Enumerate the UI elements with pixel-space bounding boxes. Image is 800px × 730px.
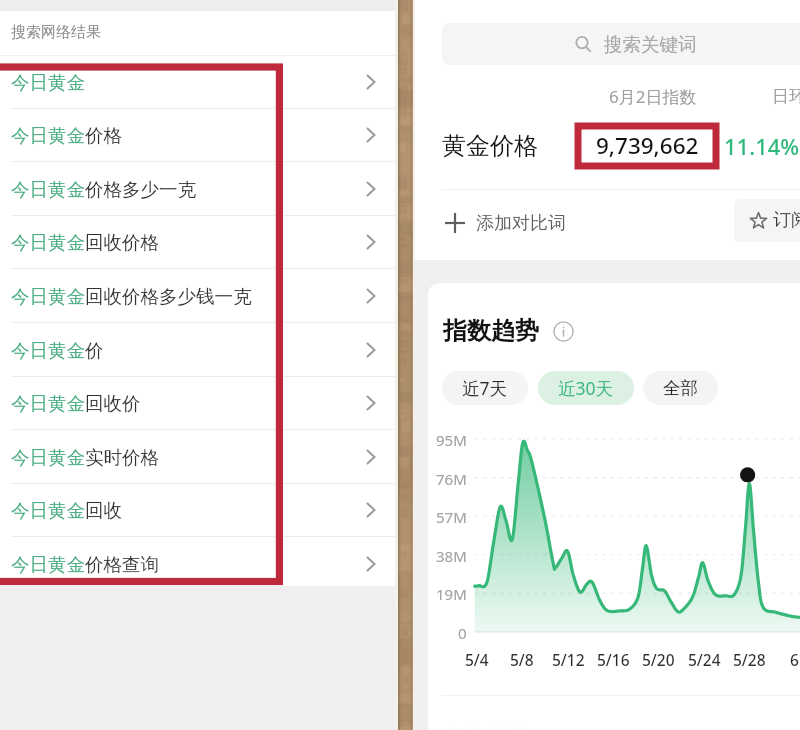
- button[interactable]: 近7天: [442, 371, 528, 405]
- other: Open suggestion: [361, 393, 381, 413]
- staticText: 今日黄金: [11, 499, 85, 522]
- staticText: 价: [85, 339, 104, 362]
- staticText: 今日黄金: [11, 178, 85, 201]
- staticText: 6月2日指数: [609, 85, 697, 108]
- button[interactable]: 订阅: [734, 199, 800, 242]
- staticText: 回收: [85, 499, 122, 522]
- button[interactable]: 近30天: [538, 371, 634, 405]
- button[interactable]: 今日黄金: [0, 108, 396, 162]
- staticText: 今日黄金: [11, 71, 85, 94]
- button[interactable]: 添加对比词: [443, 205, 566, 241]
- button[interactable]: 今日黄金: [0, 215, 396, 269]
- other: Open suggestion: [361, 72, 381, 92]
- other: Open suggestion: [361, 447, 381, 467]
- staticText: 57M: [436, 507, 467, 527]
- staticText: 今日黄金: [11, 553, 85, 576]
- staticText: 76M: [436, 469, 467, 489]
- staticText: 5/4: [465, 649, 489, 670]
- staticText: 95M: [436, 430, 467, 450]
- staticText: 今日黄金: [11, 124, 85, 147]
- staticText: 订阅: [773, 209, 800, 232]
- other: Info: [553, 321, 574, 342]
- button[interactable]: 今日黄金: [0, 430, 396, 484]
- button[interactable]: 今日黄金: [0, 269, 396, 323]
- staticText: 今日黄金: [11, 231, 85, 254]
- other: Open suggestion: [361, 179, 381, 199]
- staticText: 搜索关键词: [604, 33, 697, 56]
- staticText: 0: [458, 623, 467, 643]
- other: Open suggestion: [361, 340, 381, 360]
- staticText: 5/20: [642, 649, 675, 670]
- staticText: 5/16: [597, 649, 630, 670]
- staticText: 9,739,662: [596, 130, 699, 161]
- staticText: 5/24: [688, 649, 721, 670]
- other: Open suggestion: [361, 232, 381, 252]
- staticText: 价格: [85, 124, 122, 147]
- staticText: 近7天: [462, 376, 508, 400]
- staticText: 今日黄金: [11, 339, 85, 362]
- staticText: 回收价格多少钱一克: [85, 285, 252, 308]
- staticText: 添加对比词: [476, 212, 566, 235]
- staticText: 黄金价格: [442, 131, 538, 161]
- staticText: 实时价格: [85, 446, 159, 469]
- staticText: 11.14%: [724, 131, 800, 161]
- staticText: 今日黄金: [11, 285, 85, 308]
- staticText: 5/12: [552, 649, 585, 670]
- staticText: 19M: [436, 584, 467, 604]
- button[interactable]: 今日黄金: [0, 55, 396, 109]
- staticText: 价格多少一克: [85, 178, 196, 201]
- staticText: 今日黄金: [11, 446, 85, 469]
- staticText: 回收价格: [85, 231, 159, 254]
- staticText: 指数趋势: [443, 316, 539, 346]
- button[interactable]: 今日黄金: [0, 483, 396, 537]
- staticText: 38M: [436, 546, 467, 566]
- button[interactable]: 全部: [643, 371, 718, 405]
- staticText: 6: [790, 649, 799, 670]
- other: Open suggestion: [361, 125, 381, 145]
- staticText: 日环: [772, 86, 800, 107]
- staticText: 近30天: [558, 376, 614, 400]
- button[interactable]: 今日黄金: [0, 323, 396, 377]
- other: Open suggestion: [361, 500, 381, 520]
- staticText: 价格查询: [85, 553, 159, 576]
- button[interactable]: 今日黄金: [0, 376, 396, 430]
- staticText: 5/8: [510, 649, 534, 670]
- staticText: 全部: [663, 377, 698, 399]
- staticText: 回收价: [85, 392, 141, 415]
- button[interactable]: 今日黄金: [0, 162, 396, 216]
- other: Open suggestion: [361, 286, 381, 306]
- staticText: 5/28: [733, 649, 766, 670]
- staticText: 搜索网络结果: [11, 23, 101, 42]
- button[interactable]: 今日黄金: [0, 537, 396, 591]
- button[interactable]: 搜索关键词: [442, 23, 800, 65]
- staticText: 今日黄金: [11, 392, 85, 415]
- other: Open suggestion: [361, 554, 381, 574]
